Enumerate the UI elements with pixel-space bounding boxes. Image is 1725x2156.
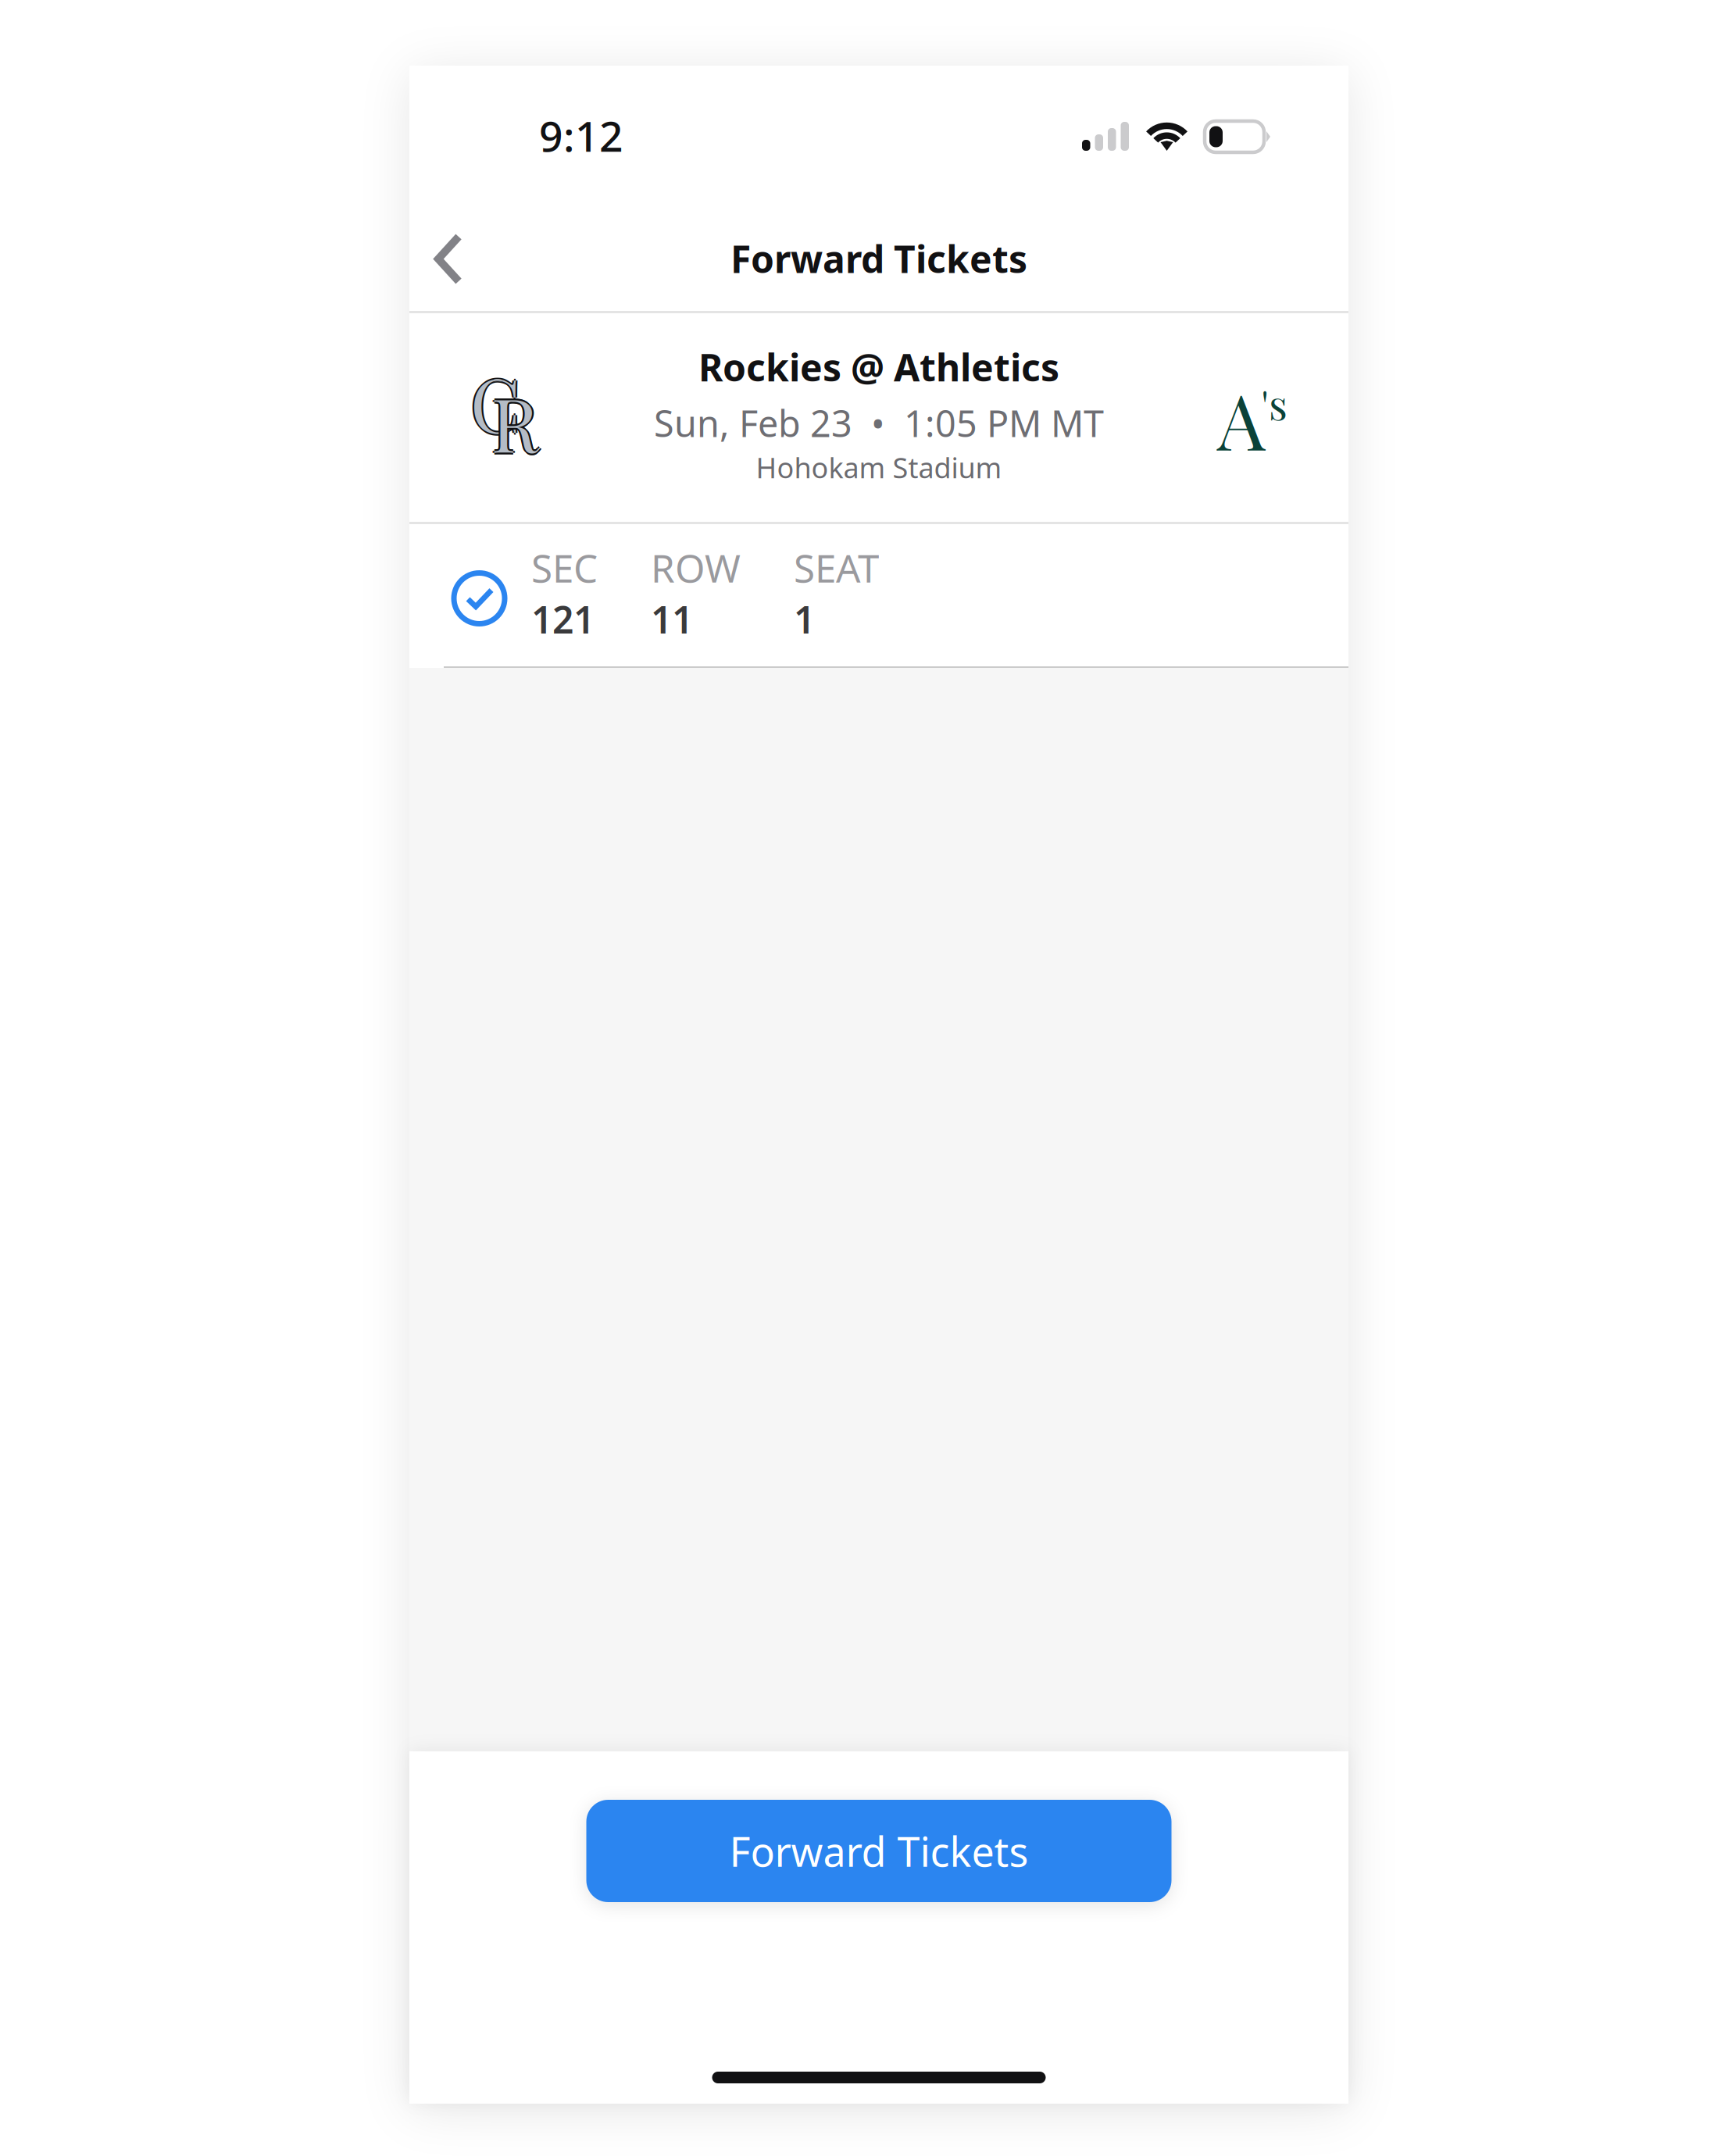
staticText: R <box>491 374 538 471</box>
staticText: Sun, Feb 23 • 1:05 PM MT <box>654 399 1104 447</box>
staticText: R <box>490 374 537 471</box>
staticText: C <box>470 356 520 453</box>
staticText: R <box>491 372 538 469</box>
staticText: C <box>470 353 520 450</box>
staticText: SEAT <box>794 542 879 593</box>
staticText: SEC <box>531 542 598 593</box>
staticText: C <box>470 354 520 451</box>
button[interactable]: Back <box>421 223 493 294</box>
staticText: 's <box>1261 375 1287 431</box>
staticText: R <box>491 376 538 473</box>
staticText: 1 <box>794 594 815 644</box>
staticText: A <box>1217 368 1265 470</box>
staticText: Forward Tickets <box>729 1824 1029 1878</box>
staticText: Hohokam Stadium <box>756 449 1002 486</box>
staticText: Forward Tickets <box>730 234 1027 283</box>
staticText: 11 <box>651 594 693 644</box>
staticText: R <box>493 374 540 471</box>
staticText: ROW <box>651 542 741 593</box>
staticText: R <box>490 374 537 471</box>
staticText: R <box>493 374 540 471</box>
staticText: Rockies @ Athletics <box>698 342 1059 392</box>
button[interactable]: SEC <box>409 524 1348 666</box>
staticText: C <box>472 354 522 451</box>
staticText: R <box>491 372 538 469</box>
staticText: R <box>491 376 538 473</box>
staticText: C <box>469 354 519 451</box>
staticText: 121 <box>531 594 595 644</box>
button[interactable]: Forward Tickets <box>586 1800 1171 1902</box>
staticText: 9:12 <box>539 108 623 163</box>
